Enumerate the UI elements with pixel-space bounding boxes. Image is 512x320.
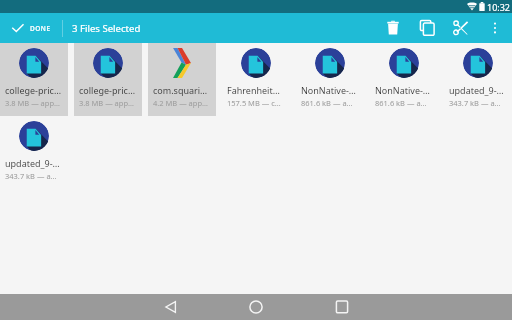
staticText: 861.6 kB — a… [301,98,353,108]
staticText: updated_9-… [5,157,60,169]
staticText: 3.8 MB — app… [79,98,134,108]
staticText: 3 Files Selected [72,22,141,35]
button[interactable]: college-pric… [74,43,142,116]
staticText: 157.5 MB — c… [227,98,281,108]
button[interactable]: Cut [444,13,478,43]
staticText: Fahrenheit… [227,84,280,96]
button[interactable]: Delete [376,13,410,43]
staticText: 4.2 MB — app… [153,98,208,108]
staticText: com.squari… [153,84,208,96]
button[interactable]: More options [478,13,512,43]
button[interactable]: updated_9-… [444,43,512,116]
button[interactable]: Home [228,294,284,320]
staticText: NonNative-… [375,84,430,96]
button[interactable]: Copy [410,13,444,43]
staticText: 343.7 kB — a… [449,98,501,108]
staticText: 3.8 MB — app… [5,98,60,108]
button[interactable]: NonNative-… [370,43,438,116]
staticText: 343.7 kB — a… [5,171,57,181]
staticText: 10:32 [487,1,511,13]
staticText: DONE [30,24,51,33]
button[interactable]: NonNative-… [296,43,364,116]
staticText: college-pric… [5,84,62,96]
button[interactable]: DONE [0,13,62,43]
staticText: college-pric… [79,84,136,96]
button[interactable]: Recent apps [314,294,370,320]
button[interactable]: com.squari… [148,43,216,116]
button[interactable]: Back [143,294,199,320]
staticText: NonNative-… [301,84,356,96]
button[interactable]: college-pric… [0,43,68,116]
staticText: updated_9-… [449,84,504,96]
staticText: 861.6 kB — a… [375,98,427,108]
button[interactable]: Fahrenheit… [222,43,290,116]
button[interactable]: updated_9-… [0,116,68,189]
